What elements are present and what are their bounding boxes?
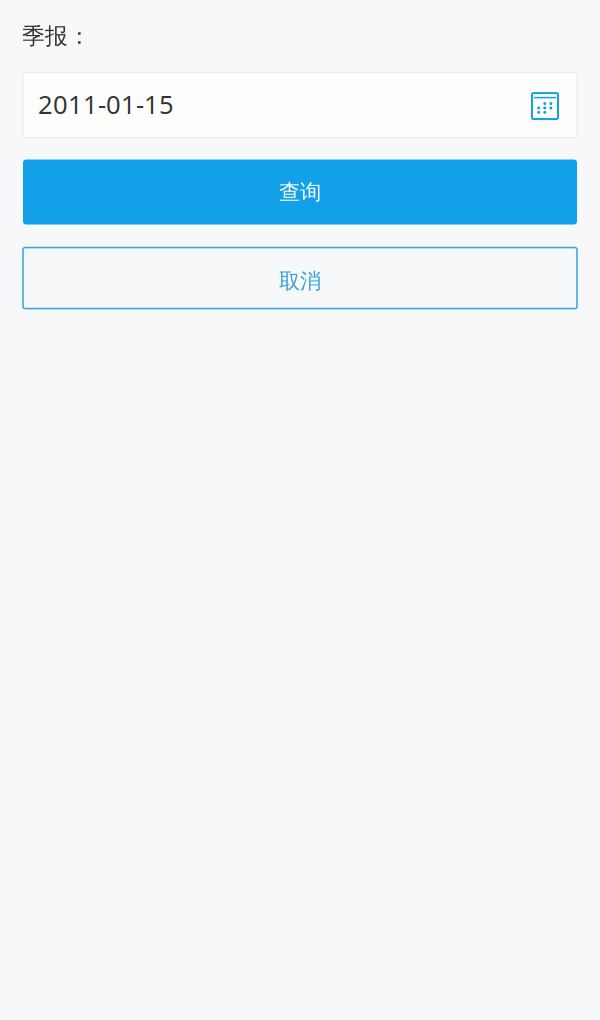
staticText: 取消: [279, 268, 321, 294]
staticText: 查询: [279, 179, 321, 205]
staticText: 季报：: [22, 22, 91, 51]
staticText: 2011-01-15: [38, 87, 174, 121]
button[interactable]: 取消: [23, 248, 577, 309]
button[interactable]: 2011-01-15: [23, 73, 577, 138]
button[interactable]: 查询: [23, 160, 577, 225]
